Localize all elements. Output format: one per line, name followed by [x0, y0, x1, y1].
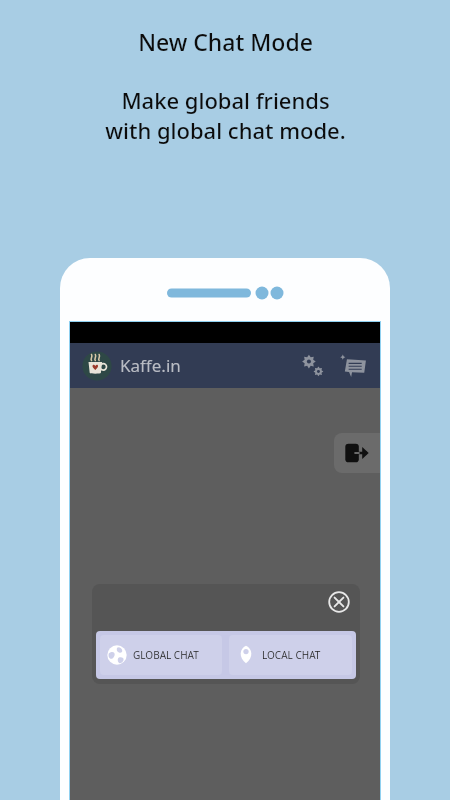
button[interactable]: Close [328, 591, 350, 613]
staticText: Kaffe.in [120, 354, 181, 377]
staticText: New Chat Mode [138, 26, 313, 57]
button[interactable]: Logout [334, 433, 380, 473]
button[interactable]: LOCAL CHAT [229, 635, 352, 675]
button[interactable]: GLOBAL CHAT [100, 635, 222, 675]
button[interactable]: New chat [336, 349, 370, 383]
staticText: LOCAL CHAT [262, 648, 321, 662]
staticText: Make global friends with global chat mod… [105, 85, 346, 145]
staticText: GLOBAL CHAT [133, 648, 199, 662]
button[interactable]: Settings [296, 349, 330, 383]
